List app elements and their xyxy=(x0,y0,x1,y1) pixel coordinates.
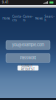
button[interactable]: News xyxy=(33,16,44,20)
staticText: 9:41 xyxy=(2,1,8,4)
button[interactable]: Careers xyxy=(23,16,33,20)
staticText: Careers xyxy=(23,15,33,22)
staticText: Password xyxy=(20,56,36,60)
button[interactable]: Search xyxy=(44,16,55,20)
staticText: you@example.com xyxy=(12,43,44,47)
staticText: Search xyxy=(45,15,55,22)
staticText: News xyxy=(35,17,42,20)
staticText: SUBMIT REQUEST xyxy=(21,65,35,71)
staticText: Contacts xyxy=(12,15,22,22)
staticText: Home xyxy=(2,17,10,20)
button[interactable]: SUBMIT REQUEST xyxy=(17,65,38,70)
button[interactable]: Contacts xyxy=(12,16,23,20)
button[interactable]: Home xyxy=(1,16,12,20)
